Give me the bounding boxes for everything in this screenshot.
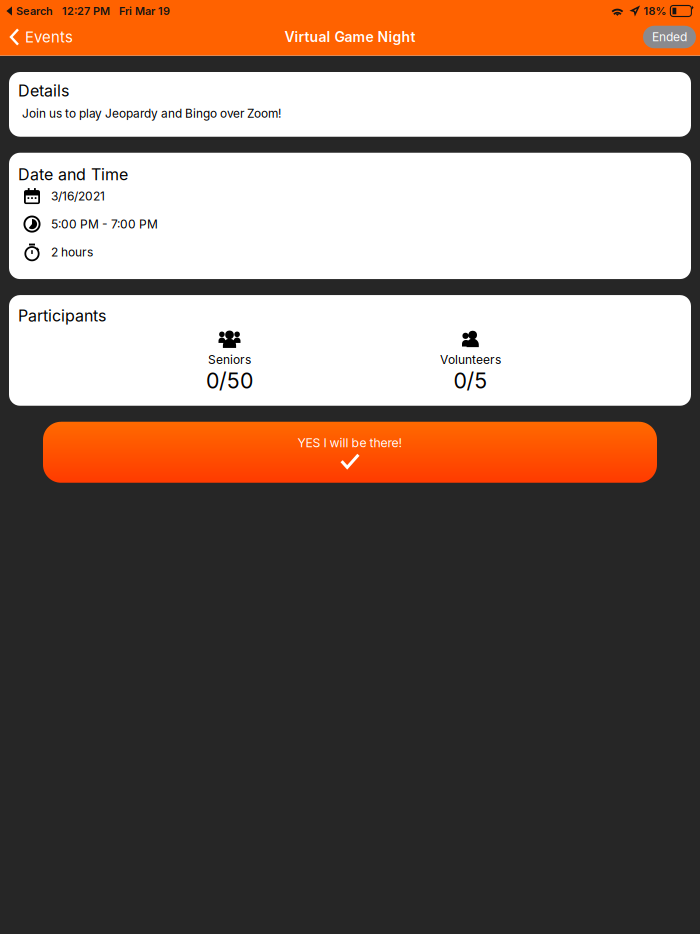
button[interactable]: Events (4, 24, 78, 50)
staticText: YES I will be there! (297, 435, 402, 450)
staticText: Seniors (208, 352, 251, 367)
staticText: Events (25, 28, 73, 46)
staticText: 0/50 (206, 368, 253, 394)
staticText: 2 hours (51, 245, 93, 259)
staticText: Date and Time (18, 165, 128, 184)
staticText: 5:00 PM - 7:00 PM (51, 217, 158, 231)
staticText: 18% (643, 4, 666, 18)
staticText: Search (13, 4, 53, 18)
staticText: 3/16/2021 (51, 189, 105, 203)
staticText: Ended (652, 30, 687, 44)
staticText: Join us to play Jeopardy and Bingo over … (22, 106, 281, 121)
staticText: Virtual Game Night (284, 28, 415, 45)
staticText: Fri Mar 19 (110, 4, 170, 18)
staticText: Participants (18, 306, 106, 325)
button[interactable]: YES I will be there! (43, 422, 657, 483)
button[interactable]: Ended (643, 26, 696, 48)
staticText: Details (18, 81, 69, 100)
staticText: Volunteers (440, 352, 501, 367)
staticText: 0/5 (453, 368, 487, 394)
staticText: 12:27 PM (53, 4, 110, 18)
